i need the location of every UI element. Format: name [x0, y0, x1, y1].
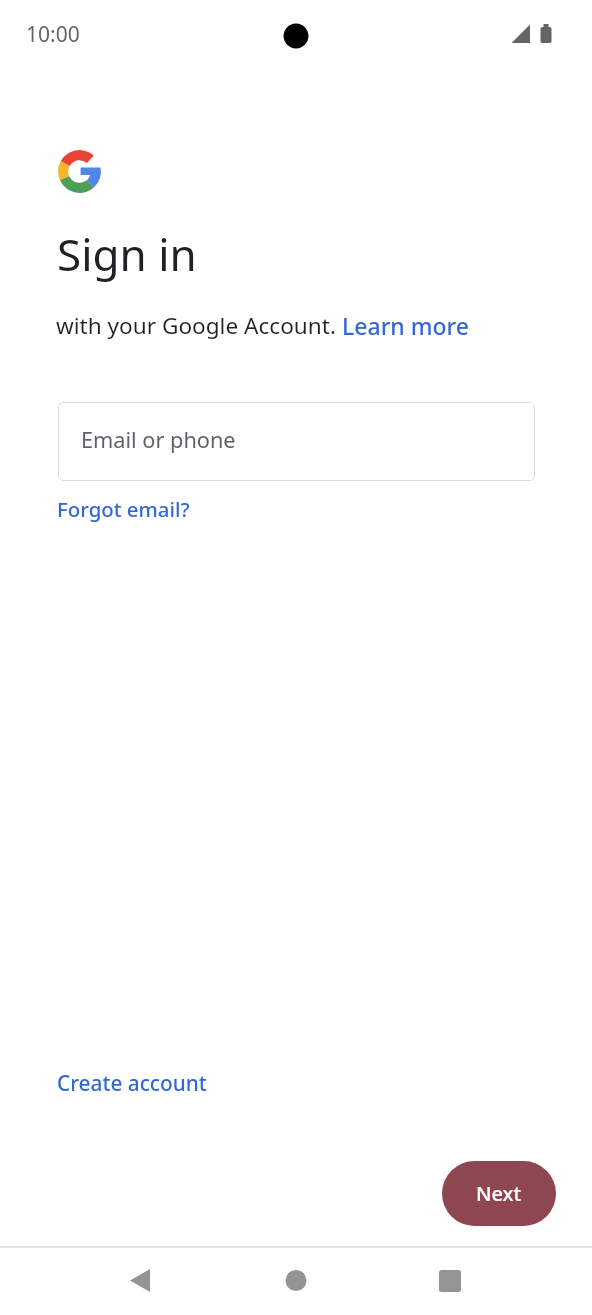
staticText: Learn more	[342, 310, 470, 341]
staticText: 10:00	[26, 20, 80, 49]
staticText: Next	[476, 1180, 522, 1207]
button[interactable]: Email or phone	[58, 402, 535, 481]
button[interactable]: Recent apps	[402, 1247, 498, 1315]
staticText: Email or phone	[81, 425, 236, 455]
staticText: Forgot email?	[57, 495, 190, 523]
button[interactable]: Learn more	[342, 310, 470, 341]
button[interactable]: Forgot email?	[57, 495, 190, 523]
button[interactable]: Home	[248, 1247, 344, 1315]
staticText: Sign in	[57, 224, 197, 284]
staticText: Create account	[57, 1069, 207, 1097]
button[interactable]: Back	[92, 1247, 188, 1315]
button[interactable]: Create account	[57, 1069, 207, 1097]
staticText: with your Google Account.	[56, 310, 342, 341]
button[interactable]: Next	[442, 1161, 556, 1226]
